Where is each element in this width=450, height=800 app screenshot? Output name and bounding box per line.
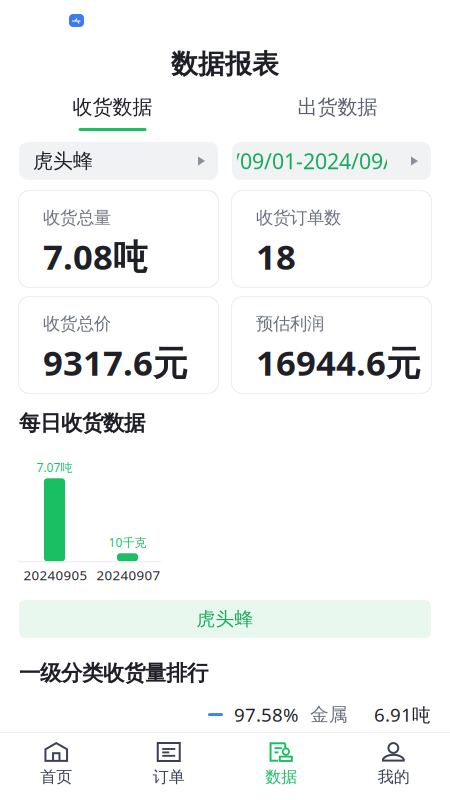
staticText: 订单: [153, 767, 185, 787]
staticText: 收货总价: [43, 313, 111, 334]
staticText: 收货订单数: [256, 207, 341, 228]
staticText: 数据报表: [171, 48, 279, 80]
button[interactable]: 2024/09/01-2024/09/30: [232, 142, 431, 180]
staticText: 金属: [310, 703, 348, 726]
staticText: 数据: [265, 767, 297, 787]
staticText: 一级分类收货量排行: [19, 660, 208, 686]
staticText: 收货总量: [43, 207, 111, 228]
staticText: 每日收货数据: [19, 410, 145, 436]
staticText: 20240905: [23, 566, 87, 584]
staticText: 虎头蜂: [196, 607, 253, 630]
staticText: 97.58%: [234, 702, 299, 727]
button[interactable]: 虎头蜂: [19, 142, 218, 180]
staticText: 虎头蜂: [33, 149, 93, 173]
staticText: 6.91吨: [374, 702, 431, 727]
staticText: 18: [256, 233, 296, 279]
staticText: 20240907: [96, 566, 160, 584]
button[interactable]: 虎头蜂: [19, 600, 431, 638]
button[interactable]: 订单: [112, 733, 225, 800]
staticText: 预估利润: [256, 313, 324, 334]
staticText: 出货数据: [297, 95, 377, 119]
button[interactable]: 出货数据: [225, 88, 450, 142]
staticText: 7.07吨: [36, 459, 72, 475]
staticText: 16944.6元: [256, 339, 421, 385]
button[interactable]: 我的: [337, 733, 450, 800]
button[interactable]: 收货数据: [0, 88, 225, 142]
button[interactable]: 数据: [225, 733, 337, 800]
staticText: 7.08吨: [43, 233, 148, 279]
staticText: 9317.6元: [43, 339, 188, 385]
staticText: 首页: [40, 767, 72, 787]
staticText: 10千克: [108, 534, 146, 550]
staticText: 收货数据: [72, 95, 152, 119]
staticText: 我的: [378, 767, 410, 787]
button[interactable]: 首页: [0, 733, 112, 800]
staticText: 2024/09/01-2024/09/30: [184, 147, 415, 175]
